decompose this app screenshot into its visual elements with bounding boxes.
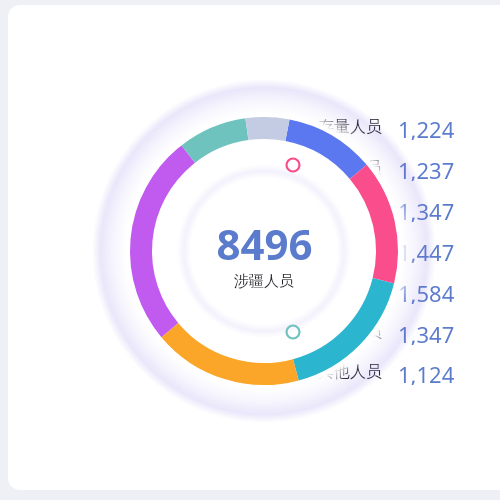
staticText: 1,447 [398,237,455,263]
staticText: 1,584 [398,278,455,304]
staticText: 在审人员 [318,281,382,301]
staticText: 1,124 [398,359,455,385]
staticText: 在中人员 [318,240,382,260]
staticText: 临时人员 [318,322,382,342]
button[interactable]: 核查人员 [318,196,490,222]
staticText: 1,347 [398,319,455,345]
staticText: 1,224 [398,114,455,140]
staticText: 核查人员 [318,199,382,219]
button[interactable]: 在中人员 [318,237,490,263]
button[interactable]: 临时人员 [318,319,490,345]
button[interactable]: 在审人员 [318,278,490,304]
staticText: 8496 [216,215,313,272]
staticText: 历史人员 [318,158,382,178]
staticText: 1,347 [398,196,455,222]
button[interactable]: 存量人员 [318,114,490,140]
button[interactable]: 其他人员 [318,359,490,385]
button[interactable]: 历史人员 [318,155,490,181]
staticText: 其他人员 [318,362,382,382]
staticText: 存量人员 [318,117,382,137]
staticText: 1,237 [398,155,455,181]
button[interactable]: 涉疆人员分布环形图 [0,0,500,500]
button[interactable]: 8496 [184,215,344,291]
staticText: 涉疆人员 [234,272,294,291]
